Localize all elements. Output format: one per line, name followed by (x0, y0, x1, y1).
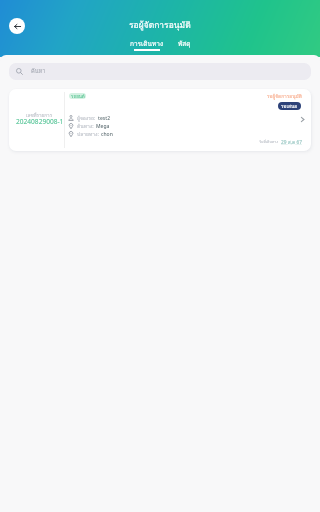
staticText: 29 ส.ค 67 (281, 138, 302, 146)
staticText: รถยนต์ (71, 93, 85, 99)
staticText: test2 (98, 115, 110, 122)
staticText: วันที่เดินทาง (259, 139, 279, 145)
button[interactable]: รอเสนอ (278, 102, 301, 110)
staticText: รอผู้จัดการอนุมัติ (267, 92, 302, 100)
staticText: chon (101, 131, 113, 138)
staticText: ผู้จองรถ: (77, 114, 96, 122)
staticText: ปลายทาง: (77, 130, 99, 138)
staticText: Mega (96, 123, 110, 130)
staticText: รอผู้จัดการอนุมัติ (129, 18, 191, 32)
button[interactable]: พัสดุ (178, 39, 191, 49)
button[interactable]: Back (9, 18, 25, 34)
staticText: รอเสนอ (281, 102, 298, 110)
button[interactable]: Open detail (298, 115, 307, 124)
button[interactable]: ค้นหา (9, 63, 311, 80)
staticText: 20240829008-1 (16, 117, 64, 126)
button[interactable]: เลขที่รายการ (9, 89, 311, 151)
staticText: การเดินทาง (130, 39, 164, 49)
staticText: ค้นหา (31, 67, 46, 76)
staticText: พัสดุ (178, 39, 191, 49)
staticText: เลขที่รายการ (26, 112, 53, 119)
button[interactable]: การเดินทาง (130, 39, 164, 51)
staticText: ต้นทาง: (77, 122, 94, 130)
